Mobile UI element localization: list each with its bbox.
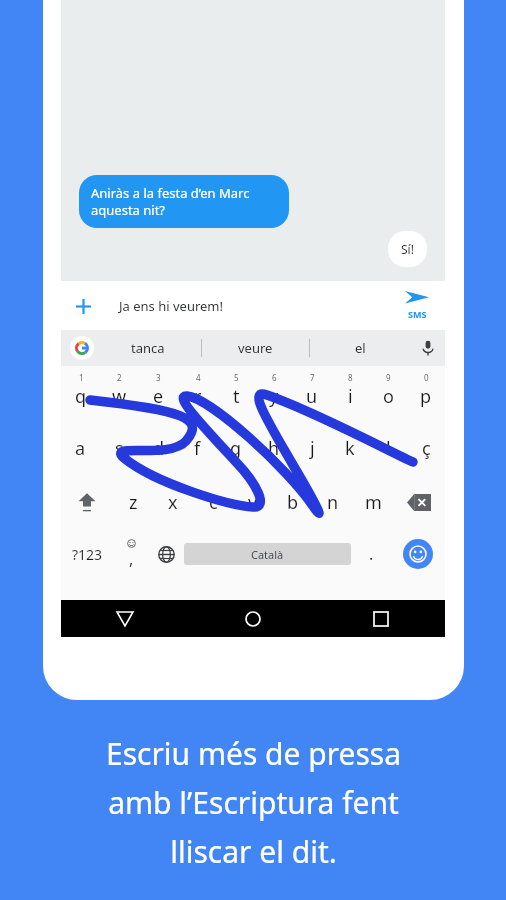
- button[interactable]: ,: [114, 530, 148, 578]
- staticText: z: [129, 490, 138, 515]
- button[interactable]: 0: [407, 366, 445, 416]
- staticText: ,: [129, 548, 134, 570]
- staticText: ?123: [72, 545, 103, 564]
- button[interactable]: Send SMS: [389, 281, 445, 330]
- button[interactable]: j: [293, 423, 331, 473]
- button[interactable]: Change language: [148, 530, 184, 578]
- staticText: SMS: [408, 308, 427, 320]
- button[interactable]: f: [178, 423, 217, 473]
- staticText: 9: [386, 372, 391, 383]
- staticText: y: [269, 384, 279, 409]
- button[interactable]: Shift: [61, 478, 113, 526]
- button[interactable]: 1: [61, 366, 100, 416]
- button[interactable]: l: [369, 423, 407, 473]
- staticText: r: [194, 384, 202, 409]
- button[interactable]: k: [331, 423, 369, 473]
- button[interactable]: Backspace: [393, 478, 445, 526]
- staticText: 0: [424, 372, 429, 383]
- button[interactable]: 6: [255, 366, 293, 416]
- staticText: .: [369, 543, 374, 565]
- button[interactable]: veure: [202, 330, 309, 366]
- button[interactable]: Back: [61, 600, 189, 637]
- staticText: ç: [422, 436, 431, 461]
- button[interactable]: b: [273, 478, 313, 526]
- button[interactable]: Add attachment: [61, 284, 105, 328]
- button[interactable]: Google search: [70, 336, 94, 360]
- button[interactable]: el: [310, 330, 411, 366]
- staticText: n: [327, 490, 339, 515]
- button[interactable]: Home: [189, 600, 317, 637]
- staticText: Ja ens hi veurem!: [119, 297, 389, 315]
- button[interactable]: g: [217, 423, 255, 473]
- button[interactable]: z: [113, 478, 153, 526]
- staticText: 1: [79, 372, 84, 383]
- staticText: Català: [251, 547, 284, 562]
- staticText: f: [194, 436, 201, 461]
- staticText: s: [115, 436, 124, 461]
- staticText: tanca: [131, 339, 165, 357]
- staticText: 3: [156, 372, 161, 383]
- staticText: q: [75, 384, 87, 409]
- staticText: p: [420, 384, 432, 409]
- button[interactable]: tanca: [94, 330, 201, 366]
- staticText: u: [306, 384, 318, 409]
- staticText: l: [386, 436, 391, 461]
- button[interactable]: c: [193, 478, 233, 526]
- staticText: 6: [272, 372, 277, 383]
- staticText: j: [310, 436, 315, 461]
- staticText: 8: [348, 372, 353, 383]
- staticText: o: [383, 384, 394, 409]
- button[interactable]: .: [351, 530, 391, 578]
- staticText: e: [153, 384, 164, 409]
- button[interactable]: ?123: [61, 530, 114, 578]
- staticText: Aniràs a la festa d’en Marc aquesta nit?: [91, 184, 250, 219]
- button[interactable]: h: [255, 423, 293, 473]
- staticText: k: [345, 436, 355, 461]
- staticText: h: [268, 436, 280, 461]
- button[interactable]: Aniràs a la festa d’en Marc aquesta nit?: [79, 175, 289, 228]
- button[interactable]: 5: [217, 366, 255, 416]
- button[interactable]: Recent apps: [317, 600, 445, 637]
- staticText: d: [153, 436, 165, 461]
- button[interactable]: d: [139, 423, 178, 473]
- staticText: b: [287, 490, 299, 515]
- staticText: g: [230, 436, 242, 461]
- button[interactable]: 2: [100, 366, 139, 416]
- staticText: m: [365, 490, 382, 515]
- staticText: 4: [196, 372, 201, 383]
- staticText: veure: [238, 339, 273, 357]
- button[interactable]: v: [233, 478, 273, 526]
- button[interactable]: 3: [139, 366, 178, 416]
- staticText: t: [233, 384, 240, 409]
- button[interactable]: 8: [331, 366, 369, 416]
- button[interactable]: Sí!: [388, 231, 427, 267]
- staticText: 2: [117, 372, 122, 383]
- staticText: Sí!: [401, 241, 414, 257]
- button[interactable]: n: [313, 478, 353, 526]
- button[interactable]: 4: [178, 366, 217, 416]
- button[interactable]: s: [100, 423, 139, 473]
- button[interactable]: a: [61, 423, 100, 473]
- button[interactable]: Emoji: [391, 530, 445, 578]
- button[interactable]: 7: [293, 366, 331, 416]
- button[interactable]: Català: [184, 543, 351, 565]
- staticText: 5: [234, 372, 239, 383]
- staticText: c: [209, 490, 218, 515]
- staticText: i: [348, 384, 353, 409]
- staticText: v: [248, 490, 258, 515]
- staticText: 7: [310, 372, 315, 383]
- button[interactable]: ç: [407, 423, 445, 473]
- staticText: Escriu més de pressa amb l’Escriptura fe…: [106, 733, 401, 872]
- button[interactable]: m: [353, 478, 393, 526]
- staticText: w: [112, 384, 127, 409]
- staticText: x: [168, 490, 178, 515]
- staticText: a: [75, 436, 86, 461]
- button[interactable]: 9: [369, 366, 407, 416]
- button[interactable]: x: [153, 478, 193, 526]
- button[interactable]: Voice input: [411, 330, 445, 366]
- staticText: el: [355, 339, 366, 357]
